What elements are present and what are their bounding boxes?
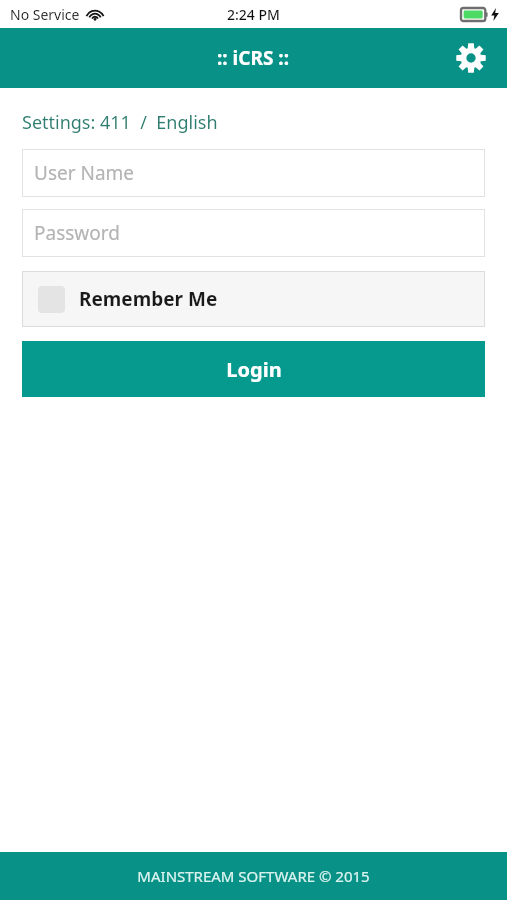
staticText: User Name <box>34 160 135 186</box>
button[interactable]: Settings: 411 / English <box>22 110 218 135</box>
staticText: No Service <box>10 5 80 24</box>
button[interactable]: Password <box>22 209 485 257</box>
staticText: 2:24 PM <box>227 5 280 24</box>
staticText: Remember Me <box>79 286 218 312</box>
button[interactable]: Login <box>22 341 485 397</box>
button[interactable]: Remember Me <box>22 271 485 327</box>
staticText: Password <box>34 220 120 246</box>
staticText: :: iCRS :: <box>217 45 290 71</box>
staticText: Settings: 411 / English <box>22 110 218 135</box>
staticText: MAINSTREAM SOFTWARE © 2015 <box>137 866 370 886</box>
staticText: Login <box>226 356 282 383</box>
button[interactable]: User Name <box>22 149 485 197</box>
button[interactable]: Settings <box>447 34 495 82</box>
